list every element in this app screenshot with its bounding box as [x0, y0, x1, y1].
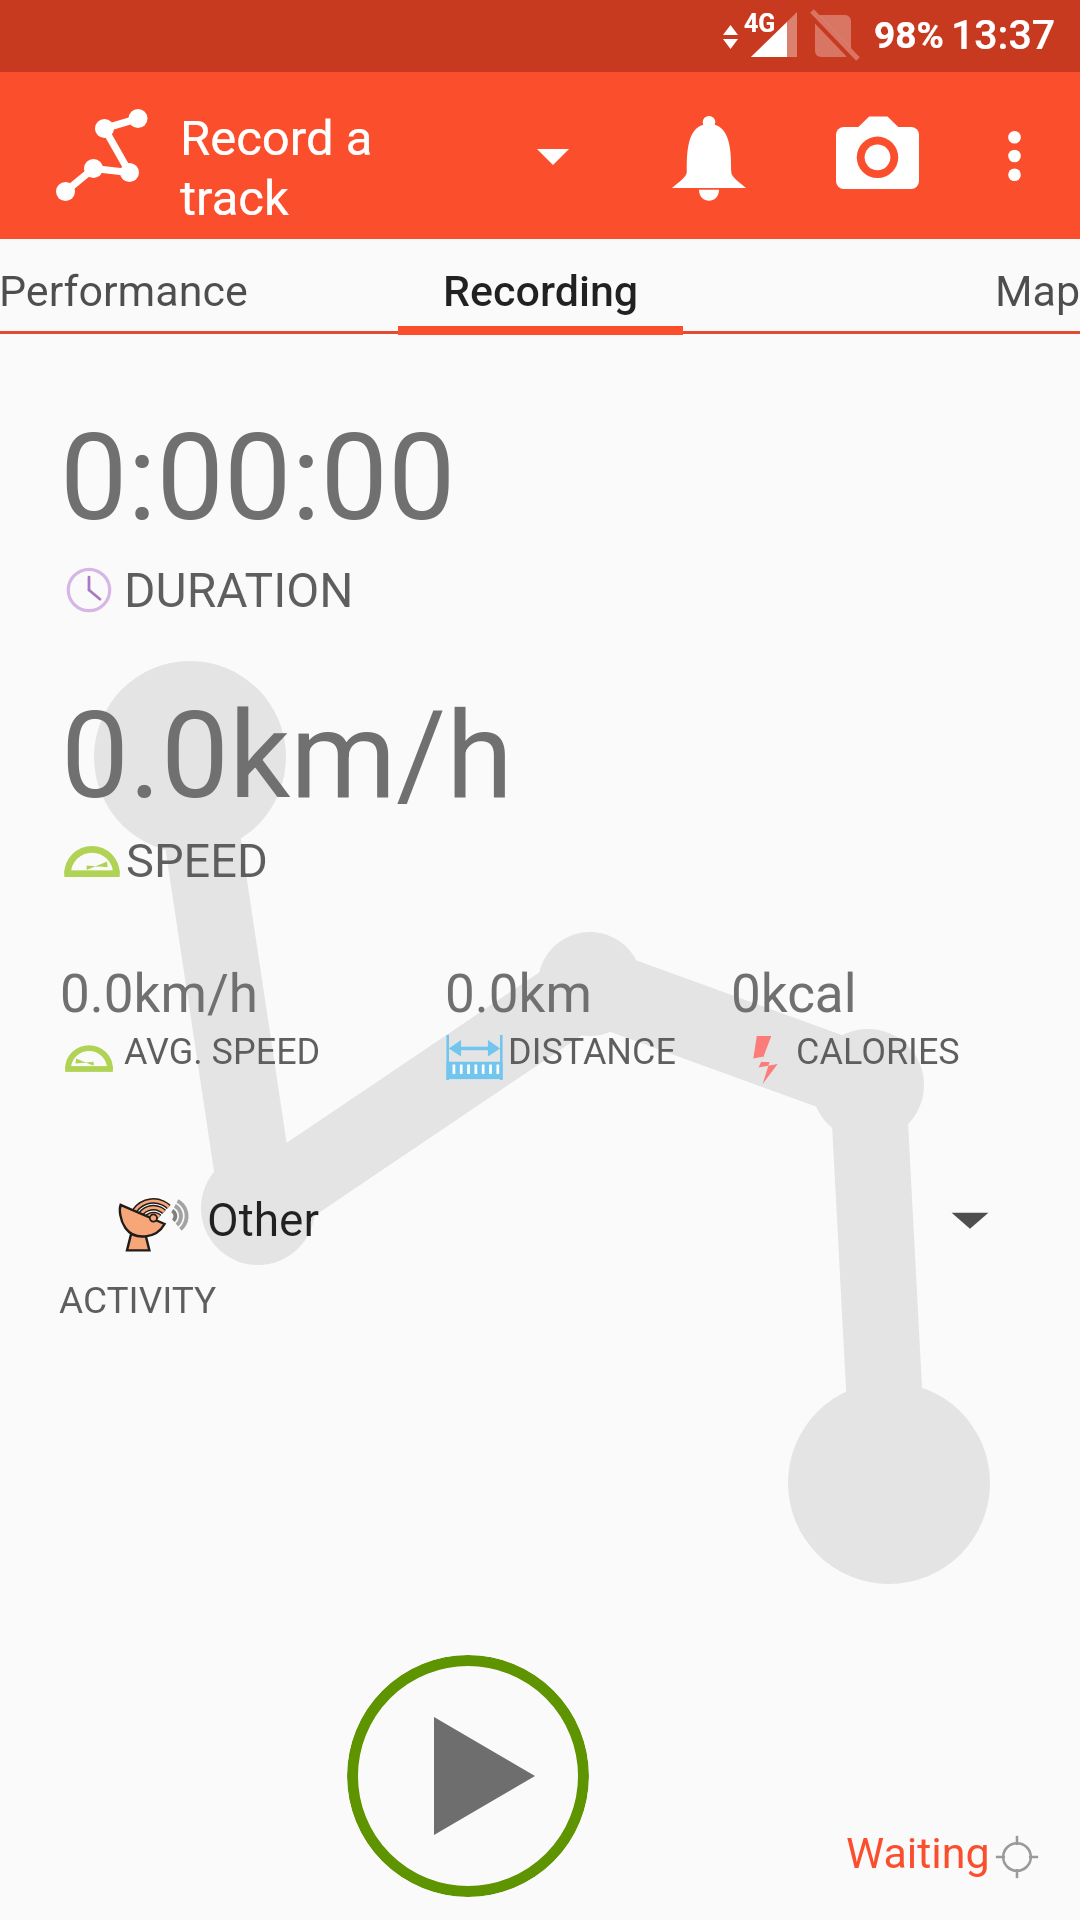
staticText: 0.0km	[445, 963, 592, 1025]
staticText: 0.0km/h	[61, 685, 513, 827]
button[interactable]: Camera	[800, 72, 956, 239]
staticText: 13:37	[951, 11, 1056, 59]
staticText: AVG. SPEED	[124, 1031, 321, 1073]
staticText: 0.0km/h	[60, 963, 258, 1025]
button[interactable]: Notifications	[650, 72, 768, 239]
button[interactable]: Waiting	[846, 1822, 1040, 1884]
button[interactable]: Start recording	[347, 1655, 589, 1897]
staticText: SPEED	[126, 833, 268, 888]
staticText: ACTIVITY	[59, 1279, 217, 1322]
button[interactable]: Performance	[0, 243, 322, 339]
staticText: Recording	[443, 266, 639, 316]
staticText: 0:00:00	[60, 408, 456, 549]
staticText: Map	[995, 266, 1080, 316]
staticText: Waiting	[846, 1828, 990, 1878]
button[interactable]: Map	[923, 243, 1080, 339]
button[interactable]: Record a track	[0, 72, 600, 239]
staticText: CALORIES	[796, 1031, 960, 1073]
staticText: Performance	[0, 266, 248, 316]
staticText: Other	[207, 1193, 320, 1247]
button[interactable]: More options	[966, 72, 1080, 239]
staticText: 0kcal	[731, 963, 857, 1025]
staticText: 98%	[874, 14, 944, 57]
staticText: DISTANCE	[508, 1031, 676, 1073]
button[interactable]: Recording	[398, 243, 683, 339]
staticText: 4G	[744, 9, 776, 38]
staticText: DURATION	[124, 562, 354, 618]
button[interactable]: Other	[0, 1175, 1080, 1265]
staticText: Record a track	[180, 110, 380, 227]
